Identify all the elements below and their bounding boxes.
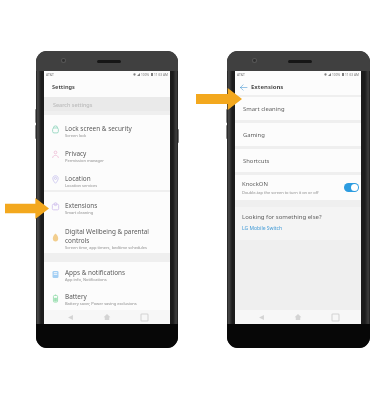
staticText: Privacy <box>65 149 87 158</box>
staticText: Extensions <box>65 201 98 210</box>
staticText: Apps & notifications <box>65 268 126 277</box>
button[interactable]: Battery <box>44 286 170 310</box>
button[interactable]: Digital Wellbeing & parental controls <box>44 217 170 253</box>
button[interactable]: Back <box>235 79 251 95</box>
staticText: Double-tap the screen to turn it on or o… <box>242 190 319 195</box>
staticText: Smart cleaning <box>65 210 94 215</box>
button[interactable]: Back <box>59 310 81 324</box>
staticText: Screen time, app timers, bedtime schedul… <box>65 245 148 250</box>
staticText: Location <box>65 174 91 183</box>
button[interactable]: Recents <box>324 310 346 324</box>
button[interactable]: LG Mobile Switch <box>242 225 283 232</box>
staticText: Smart cleaning <box>243 105 285 113</box>
staticText: 11:53 AM <box>154 73 168 77</box>
staticText: Search settings <box>53 101 93 108</box>
staticText: KnockON <box>242 180 268 188</box>
button[interactable]: Home <box>287 310 309 324</box>
button[interactable]: Lock screen & security <box>44 115 170 140</box>
staticText: Battery saver, Power saving exclusions <box>65 301 137 306</box>
button[interactable]: Search settings <box>44 97 170 111</box>
staticText: App info, Notifications <box>65 277 107 282</box>
staticText: 100% <box>141 73 150 77</box>
button[interactable]: Apps & notifications <box>44 262 170 286</box>
staticText: Location services <box>65 183 98 188</box>
staticText: Settings <box>52 83 75 91</box>
button[interactable]: Smart cleaning <box>235 97 361 120</box>
staticText: Shortcuts <box>243 157 270 165</box>
staticText: Gaming <box>243 131 265 139</box>
button[interactable]: Location <box>44 165 170 190</box>
staticText: Lock screen & security <box>65 124 132 133</box>
staticText: Battery <box>65 292 87 301</box>
button[interactable]: Recents <box>133 310 155 324</box>
button[interactable]: Back <box>250 310 272 324</box>
staticText: Extensions <box>251 83 284 91</box>
button[interactable]: Gaming <box>235 123 361 146</box>
button[interactable]: Home <box>96 310 118 324</box>
staticText: 100% <box>332 73 341 77</box>
staticText: 11:53 AM <box>345 73 359 77</box>
staticText: Permission manager <box>65 158 104 163</box>
staticText: Screen lock <box>65 133 87 138</box>
button[interactable]: Privacy <box>44 140 170 165</box>
staticText: AT&T <box>46 72 54 77</box>
staticText: Looking for something else? <box>242 213 322 221</box>
button[interactable]: KnockON <box>235 175 361 200</box>
staticText: AT&T <box>237 72 245 77</box>
button[interactable]: Shortcuts <box>235 149 361 172</box>
staticText: Digital Wellbeing & parental controls <box>65 227 164 245</box>
button[interactable]: Extensions <box>44 192 170 217</box>
